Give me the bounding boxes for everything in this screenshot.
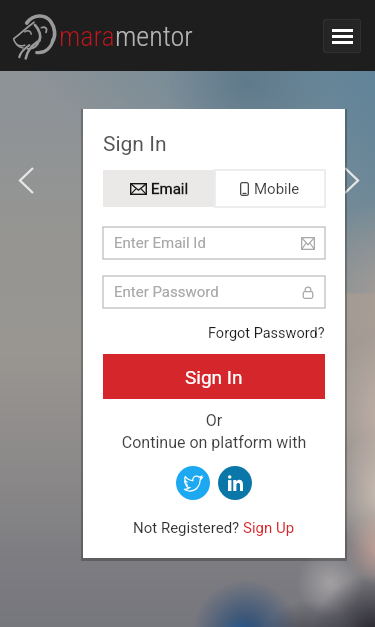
staticText: Continue on platform with	[83, 433, 345, 452]
button[interactable]: Sign Up	[243, 519, 295, 537]
button[interactable]: Sign In	[103, 354, 325, 399]
staticText: Sign In	[103, 132, 167, 157]
staticText: Enter Email Id	[114, 234, 206, 252]
button[interactable]: Previous slide	[12, 163, 40, 197]
button[interactable]: Email	[103, 170, 215, 207]
staticText: Email	[151, 180, 189, 198]
button[interactable]: Enter Email Id	[103, 227, 325, 259]
staticText: Or	[83, 411, 345, 430]
button[interactable]: Menu	[323, 19, 361, 53]
button[interactable]: Enter Password	[103, 276, 325, 308]
staticText: Mobile	[254, 180, 300, 198]
button[interactable]: Sign in with Twitter	[176, 466, 210, 500]
button[interactable]: Forgot Password?	[208, 325, 325, 342]
button[interactable]: Mobile	[215, 170, 325, 207]
button[interactable]: Sign in with LinkedIn	[218, 466, 252, 500]
staticText: Enter Password	[114, 283, 219, 301]
staticText: Not Registered?	[133, 519, 243, 537]
staticText: Sign In	[185, 366, 243, 388]
staticText: mara	[59, 20, 115, 53]
button[interactable]: Next slide	[337, 163, 365, 197]
staticText: mentor	[115, 20, 193, 53]
